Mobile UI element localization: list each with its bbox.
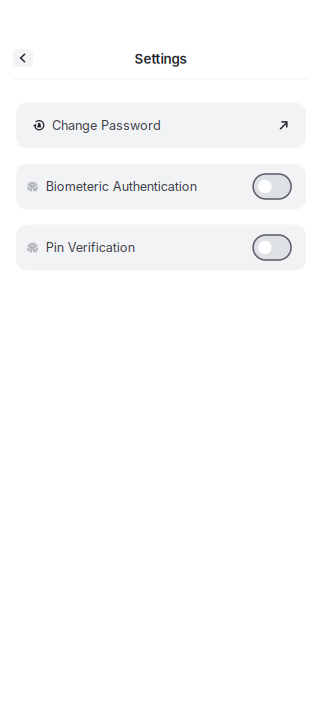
button[interactable]: Back (13, 49, 33, 67)
staticText: Settings (134, 51, 186, 67)
button[interactable]: Biometeric Authentication (16, 163, 306, 209)
button[interactable]: Change Password (16, 102, 306, 148)
staticText: Biometeric Authentication (46, 179, 197, 194)
staticText: Pin Verification (46, 240, 135, 255)
button[interactable]: Pin Verification (16, 224, 306, 270)
staticText: Change Password (52, 118, 161, 133)
